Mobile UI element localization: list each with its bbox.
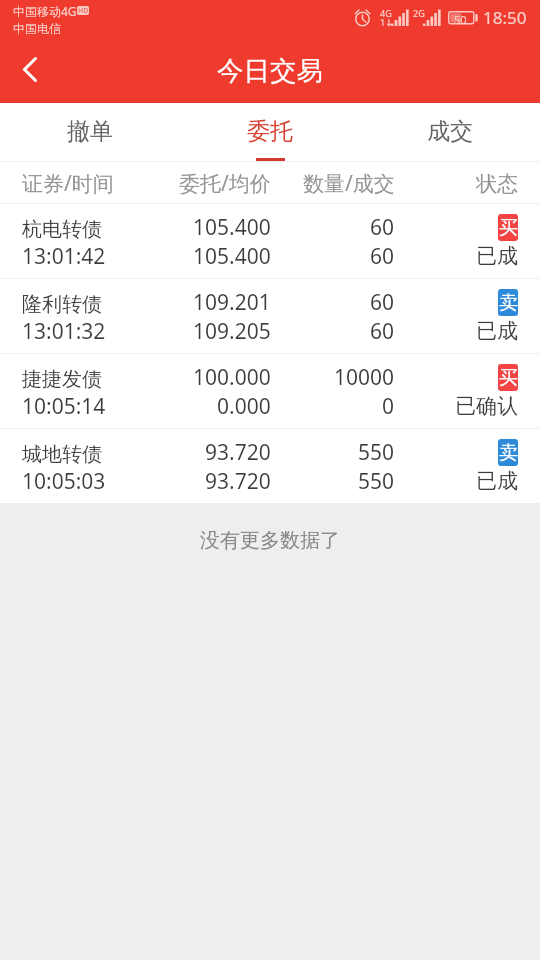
button[interactable]: 撤单 (0, 103, 180, 162)
staticText: 隆利转债 (22, 292, 102, 317)
button[interactable]: 成交 (360, 103, 540, 162)
staticText: 已成 (476, 243, 518, 269)
staticText: 50 (454, 12, 467, 27)
button[interactable]: 委托 (180, 103, 360, 162)
staticText: 13:01:42 (22, 242, 106, 271)
staticText: 93.720 (205, 438, 271, 467)
staticText: 中国移动4G (13, 3, 77, 19)
staticText: 没有更多数据了 (200, 528, 340, 553)
staticText: 状态 (476, 171, 518, 197)
staticText: 550 (358, 467, 395, 496)
staticText: 捷捷发债 (22, 367, 102, 392)
button[interactable]: 捷捷发债 (0, 353, 540, 428)
staticText: 已成 (476, 468, 518, 494)
staticText: 卖 (499, 441, 518, 465)
staticText: 城地转债 (22, 442, 102, 467)
staticText: 买 (499, 366, 518, 390)
staticText: 杭电转债 (22, 217, 102, 242)
staticText: 18:50 (483, 6, 527, 29)
staticText: 中国电信 (13, 21, 61, 36)
staticText: 委托/均价 (179, 169, 271, 198)
staticText: 10:05:14 (22, 392, 106, 421)
button[interactable]: 杭电转债 (0, 203, 540, 278)
staticText: 105.400 (193, 213, 271, 242)
staticText: 0.000 (217, 392, 271, 421)
staticText: 10000 (334, 363, 395, 392)
staticText: 已确认 (455, 393, 518, 419)
staticText: 60 (370, 317, 395, 346)
staticText: 100.000 (193, 363, 271, 392)
staticText: HD (78, 6, 89, 15)
staticText: 今日交易 (217, 54, 323, 87)
staticText: 13:01:32 (22, 317, 106, 346)
button[interactable]: Back (0, 40, 58, 103)
staticText: 0 (382, 392, 395, 421)
button[interactable]: 隆利转债 (0, 278, 540, 353)
staticText: 2G (413, 7, 425, 19)
staticText: 成交 (427, 117, 473, 146)
staticText: 撤单 (67, 117, 113, 146)
staticText: 4G (380, 7, 392, 19)
button[interactable]: 城地转债 (0, 428, 540, 503)
staticText: 已成 (476, 318, 518, 344)
staticText: 买 (499, 216, 518, 240)
staticText: 60 (370, 288, 395, 317)
staticText: 105.400 (193, 242, 271, 271)
staticText: 109.201 (193, 288, 271, 317)
staticText: 数量/成交 (303, 169, 395, 198)
staticText: 550 (358, 438, 395, 467)
staticText: 委托 (247, 117, 293, 146)
staticText: 证券/时间 (22, 169, 114, 198)
staticText: 109.205 (193, 317, 271, 346)
staticText: 60 (370, 242, 395, 271)
staticText: 卖 (499, 291, 518, 315)
staticText: 10:05:03 (22, 467, 106, 496)
staticText: 60 (370, 213, 395, 242)
staticText: 1↓ (380, 16, 393, 28)
staticText: 93.720 (205, 467, 271, 496)
